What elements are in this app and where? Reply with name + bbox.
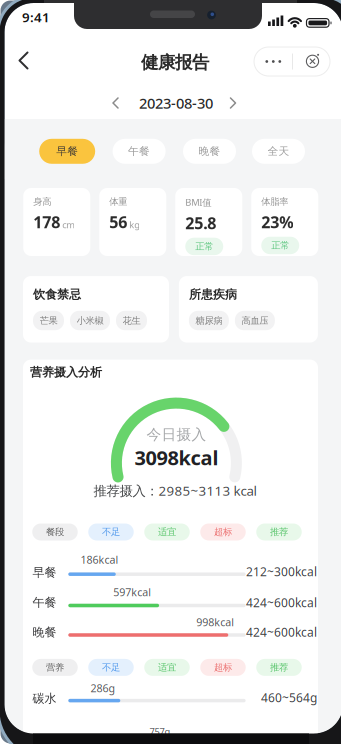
- staticText: 适宜: [158, 526, 176, 538]
- button[interactable]: Next day: [225, 96, 239, 110]
- staticText: 597kcal: [113, 585, 151, 599]
- staticText: 高血压: [241, 315, 268, 326]
- staticText: 3098kcal: [134, 444, 218, 471]
- staticText: 体脂率: [261, 196, 288, 207]
- button[interactable]: Previous day: [109, 96, 123, 110]
- button[interactable]: 2023-08-30: [139, 93, 213, 113]
- staticText: 餐段: [46, 526, 64, 538]
- staticText: 2023-08-30: [139, 93, 213, 113]
- staticText: 所患疾病: [189, 287, 237, 302]
- staticText: 424~600kcal: [246, 624, 317, 640]
- staticText: 超标: [214, 526, 232, 538]
- staticText: 178: [33, 211, 60, 233]
- staticText: 推荐: [270, 526, 288, 538]
- staticText: 小米椒: [76, 315, 103, 326]
- staticText: 午餐: [128, 145, 150, 158]
- staticText: 9:41: [22, 8, 50, 26]
- staticText: 不足: [102, 662, 120, 673]
- staticText: BMI值: [185, 196, 211, 208]
- staticText: 186kcal: [80, 552, 118, 567]
- staticText: 25.8: [185, 212, 216, 234]
- staticText: 正常: [271, 240, 289, 251]
- staticText: 推荐摄入：2985~3113 kcal: [93, 482, 256, 499]
- staticText: 今日摄入: [146, 425, 206, 443]
- staticText: 糖尿病: [195, 315, 222, 326]
- staticText: kg: [129, 218, 140, 231]
- staticText: 健康报告: [141, 52, 209, 73]
- button[interactable]: 午餐: [113, 139, 166, 164]
- staticText: 正常: [195, 241, 213, 252]
- staticText: 身高: [33, 196, 51, 207]
- button[interactable]: 早餐: [39, 139, 95, 164]
- staticText: 不足: [102, 526, 120, 538]
- staticText: 晚餐: [32, 625, 56, 639]
- staticText: 212~300kcal: [246, 563, 317, 579]
- button[interactable]: Back: [16, 50, 30, 70]
- button[interactable]: Close: [293, 47, 330, 76]
- staticText: 757g: [149, 725, 170, 737]
- button[interactable]: 全天: [252, 139, 305, 164]
- staticText: 适宜: [158, 662, 176, 673]
- staticText: 全天: [267, 145, 289, 158]
- staticText: cm: [62, 218, 75, 231]
- staticText: 晚餐: [198, 145, 220, 158]
- staticText: 286g: [90, 681, 115, 695]
- staticText: 营养: [46, 662, 64, 673]
- staticText: 424~600kcal: [246, 594, 317, 610]
- staticText: 超标: [214, 662, 232, 673]
- staticText: 早餐: [32, 565, 56, 580]
- staticText: 体重: [109, 196, 127, 207]
- staticText: 56: [109, 211, 127, 233]
- staticText: 花生: [122, 315, 140, 326]
- button[interactable]: More: [254, 47, 292, 76]
- button[interactable]: 晚餐: [183, 139, 236, 164]
- staticText: 营养摄入分析: [30, 365, 102, 380]
- staticText: 460~564g: [261, 689, 317, 705]
- staticText: 早餐: [56, 145, 78, 158]
- staticText: 碳水: [32, 691, 56, 706]
- staticText: 推荐: [270, 662, 288, 673]
- staticText: 芒果: [39, 315, 57, 326]
- staticText: 23%: [261, 211, 293, 233]
- staticText: 998kcal: [196, 615, 234, 629]
- staticText: 午餐: [32, 595, 56, 610]
- staticText: 饮食禁忌: [33, 287, 81, 302]
